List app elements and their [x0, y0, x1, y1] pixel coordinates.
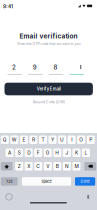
staticText: Resend Code (2:45) — [33, 100, 65, 104]
staticText: 9 — [33, 63, 37, 71]
staticText: Verify Email — [37, 86, 61, 91]
staticText: K — [75, 150, 78, 156]
button[interactable]: P — [87, 135, 95, 144]
button[interactable]: Dictation — [84, 193, 92, 201]
staticText: P — [89, 137, 92, 143]
button[interactable]: F — [34, 148, 42, 157]
staticText: A — [8, 150, 11, 156]
button[interactable]: I — [68, 135, 76, 144]
button[interactable]: X — [25, 162, 33, 170]
button[interactable]: Resend Code (2:45) — [29, 99, 69, 105]
button[interactable]: G — [44, 148, 52, 157]
button[interactable]: U — [58, 135, 66, 144]
button[interactable]: E — [20, 135, 28, 144]
button[interactable]: C — [34, 162, 42, 170]
staticText: 123 — [6, 179, 12, 184]
button[interactable]: Z — [15, 162, 23, 170]
staticText: Done — [81, 179, 90, 184]
staticText: Z — [18, 163, 21, 169]
button[interactable]: 123 — [1, 177, 18, 186]
button[interactable]: Shift — [1, 162, 13, 170]
staticText: R — [32, 137, 35, 143]
staticText: F — [37, 150, 40, 156]
button[interactable]: M — [72, 162, 80, 170]
button[interactable]: B — [53, 162, 61, 170]
button[interactable]: Next keyboard — [5, 193, 13, 201]
button[interactable]: S — [15, 148, 23, 157]
button[interactable]: space — [22, 177, 71, 186]
button[interactable]: J — [63, 148, 71, 157]
staticText: space — [41, 179, 51, 184]
button[interactable]: A — [6, 148, 14, 157]
staticText: I — [71, 137, 72, 143]
staticText: X — [27, 163, 30, 169]
button[interactable]: L — [82, 148, 90, 157]
staticText: S — [18, 150, 21, 156]
staticText: Enter the OTP code that we sent to you — [17, 42, 80, 46]
staticText: U — [60, 137, 64, 143]
button[interactable]: K — [72, 148, 80, 157]
staticText: Email verification — [20, 32, 78, 40]
staticText: N — [65, 163, 69, 169]
button[interactable]: H — [53, 148, 61, 157]
button[interactable]: T — [39, 135, 47, 144]
button[interactable]: N — [63, 162, 71, 170]
staticText: B — [56, 163, 59, 169]
staticText: 8 — [53, 63, 57, 71]
staticText: L — [84, 150, 87, 156]
staticText: Q — [3, 137, 7, 143]
button[interactable]: O — [77, 135, 85, 144]
staticText: E — [22, 137, 25, 143]
staticText: 9:41 — [3, 4, 13, 9]
button[interactable]: D — [25, 148, 33, 157]
button[interactable]: Delete — [84, 162, 96, 170]
button[interactable]: W — [10, 135, 18, 144]
staticText: 2 — [12, 63, 16, 71]
staticText: D — [27, 150, 30, 156]
staticText: G — [46, 150, 50, 156]
button[interactable]: Done — [75, 177, 95, 186]
button[interactable]: V — [44, 162, 52, 170]
staticText: H — [55, 150, 59, 156]
button[interactable]: Q — [1, 135, 9, 144]
button[interactable]: R — [29, 135, 37, 144]
staticText: Y — [51, 137, 54, 143]
button[interactable]: Y — [48, 135, 56, 144]
staticText: O — [79, 137, 83, 143]
staticText: C — [36, 163, 40, 169]
staticText: T — [41, 137, 44, 143]
staticText: W — [12, 137, 17, 143]
staticText: V — [46, 163, 49, 169]
button[interactable]: Verify Email — [4, 83, 93, 95]
staticText: J — [65, 150, 68, 156]
staticText: M — [74, 163, 78, 169]
